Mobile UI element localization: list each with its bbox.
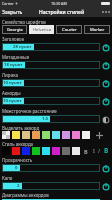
button[interactable]: Courier [56, 25, 82, 34]
button[interactable]: Toggle [100, 96, 111, 107]
staticText: Диаграммы аккордов [2, 192, 49, 198]
button[interactable]: 2 [2, 182, 100, 190]
button[interactable]: Toggle [100, 60, 111, 71]
staticText: 1.0 [42, 116, 48, 122]
button[interactable]: Bold [82, 147, 90, 155]
staticText: Marker [90, 27, 105, 33]
button[interactable]: 18 пункт [2, 61, 100, 69]
button[interactable]: More colours [95, 131, 103, 139]
button[interactable]: Toggle [100, 181, 111, 192]
button[interactable]: 0 [2, 164, 100, 172]
button[interactable]: Закрыть [2, 9, 23, 16]
staticText: 28 пункт [13, 44, 32, 50]
button[interactable]: Toggle [100, 78, 111, 89]
staticText: Прозрачность [2, 157, 33, 163]
staticText: Метаданные [2, 54, 30, 60]
button[interactable] [2, 131, 10, 139]
button[interactable]: 1.0 [2, 115, 100, 123]
button[interactable]: 10 пункт [2, 97, 100, 105]
staticText: Helvetica [33, 27, 51, 33]
staticText: Семейство шрифтов [2, 19, 46, 25]
button[interactable]: Toggle [100, 42, 111, 53]
staticText: Courier [62, 27, 77, 33]
button[interactable]: Georgia [2, 25, 27, 34]
staticText: / [98, 147, 101, 154]
staticText: Аккорды [2, 90, 21, 96]
staticText: 18 пункт [4, 62, 23, 68]
button[interactable]: Toggle [100, 163, 111, 174]
staticText: Заголовок [2, 36, 25, 42]
button[interactable]: 10 пункт [2, 79, 100, 87]
button[interactable]: Marker [84, 25, 110, 34]
button[interactable]: 28 пункт [2, 43, 100, 51]
staticText: 2 [17, 183, 20, 189]
staticText: B [104, 146, 109, 155]
staticText: Carrier [2, 1, 14, 6]
staticText: Межстрочное расстояние [2, 108, 57, 114]
staticText: Выделить аккорд [2, 125, 40, 131]
button[interactable]: More options [102, 11, 110, 13]
staticText: Стиль аккорда [2, 141, 34, 147]
button[interactable]: Helvetica [29, 25, 54, 34]
staticText: Капо [2, 175, 13, 181]
button[interactable]: Strikethrough [96, 147, 103, 154]
staticText: I [93, 147, 95, 154]
staticText: 10 пункт [3, 98, 22, 104]
staticText: Лирика [2, 72, 18, 78]
button[interactable]: Contrast [100, 114, 111, 125]
staticText: Настройки стилей [39, 9, 85, 16]
staticText: 10:30 AM [51, 1, 67, 6]
staticText: Georgia [7, 27, 23, 33]
staticText: B [84, 148, 88, 155]
staticText: 10 пункт [3, 80, 22, 86]
button[interactable]: Chord bold [102, 146, 111, 155]
button[interactable]: Italic [90, 147, 97, 154]
staticText: 0 [15, 165, 18, 171]
